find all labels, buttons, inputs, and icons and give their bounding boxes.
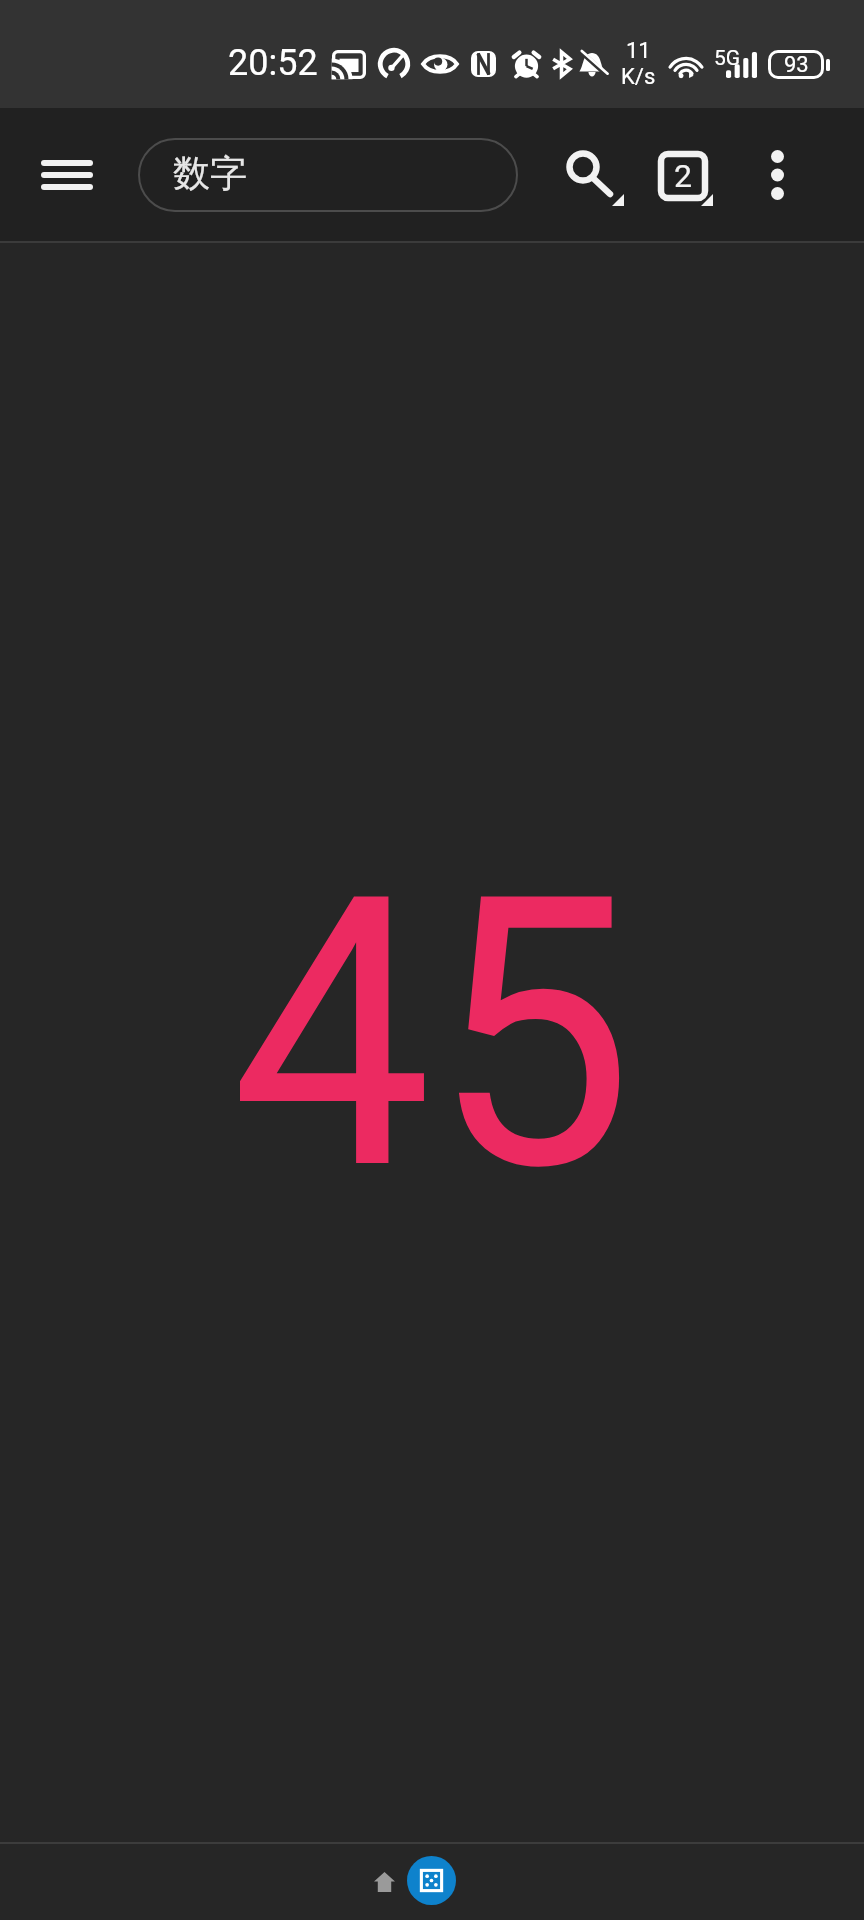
staticText: 93 [784, 52, 809, 78]
staticText: 45 [230, 815, 633, 1254]
button[interactable]: 数字 [138, 138, 518, 212]
staticText: 11 [626, 38, 651, 64]
staticText: K/s [621, 64, 656, 90]
button[interactable]: Home [356, 1853, 412, 1911]
button[interactable]: Menu [8, 133, 125, 217]
staticText: 数字 [173, 150, 247, 197]
staticText: 20:52 [228, 42, 318, 84]
button[interactable]: Tabs [636, 138, 732, 222]
staticText: 2 [674, 157, 692, 195]
button[interactable]: Search [545, 138, 641, 222]
button[interactable]: More options [735, 133, 819, 217]
button[interactable]: Random number [407, 1856, 456, 1905]
staticText: 5G [714, 46, 741, 71]
